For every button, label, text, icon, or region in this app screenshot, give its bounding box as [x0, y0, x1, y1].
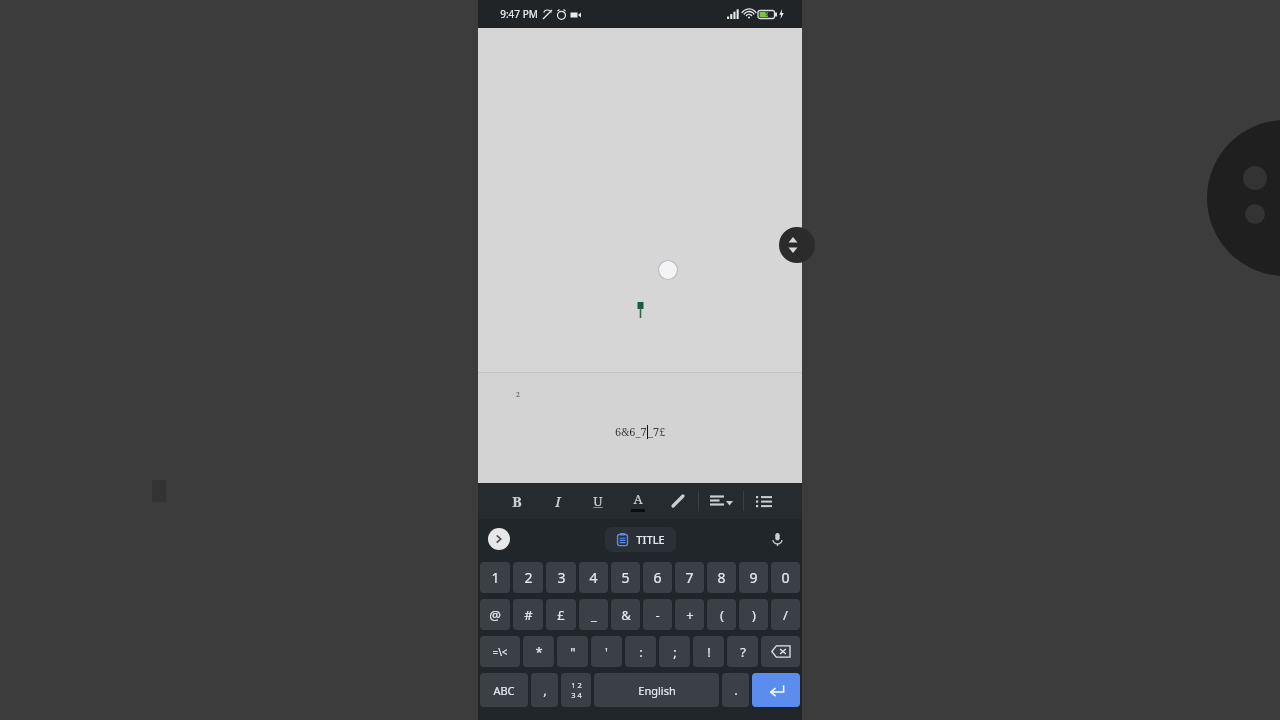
button[interactable]: Italic [537, 483, 578, 519]
staticText: ABC [493, 683, 515, 698]
staticText: " [570, 643, 576, 661]
button[interactable]: Text colour [618, 483, 658, 519]
button[interactable]: TITLE [605, 527, 676, 552]
button[interactable]: Underline [578, 483, 618, 519]
staticText: . [734, 681, 738, 699]
staticText: / [783, 606, 788, 624]
button[interactable]: & [611, 599, 640, 630]
button[interactable]: " [557, 636, 588, 667]
button[interactable]: 2 [513, 562, 543, 593]
staticText: _ [591, 606, 597, 624]
staticText: 5 [621, 568, 630, 587]
staticText: 1 2 [571, 680, 582, 690]
button[interactable]: Highlight [658, 483, 698, 519]
button[interactable]: Voice input [764, 526, 790, 552]
staticText: ' [605, 643, 608, 661]
staticText: , [543, 681, 547, 699]
button[interactable]: - [643, 599, 672, 630]
button[interactable]: More suggestions [488, 528, 510, 550]
staticText: A [633, 490, 643, 508]
button[interactable]: 9 [739, 562, 768, 593]
staticText: ! [707, 643, 711, 661]
button[interactable]: Alignment [699, 483, 743, 519]
staticText: : [639, 643, 643, 661]
staticText: 6&6_7 [615, 424, 647, 439]
staticText: 9 [749, 568, 758, 587]
button[interactable]: 0 [771, 562, 800, 593]
button[interactable]: =\< [480, 636, 520, 667]
button[interactable]: Backspace [761, 636, 800, 667]
button[interactable]: ( [707, 599, 736, 630]
button[interactable]: Bulleted list [744, 483, 784, 519]
staticText: ; [673, 643, 677, 661]
staticText: 7 [685, 568, 694, 587]
button[interactable]: Scroll up or down [779, 227, 815, 263]
button[interactable]: ? [727, 636, 758, 667]
button[interactable]: ) [739, 599, 768, 630]
button[interactable]: + [675, 599, 704, 630]
button[interactable]: 6 [643, 562, 672, 593]
staticText: & [621, 606, 631, 624]
staticText: # [524, 606, 533, 624]
staticText: - [655, 606, 660, 624]
staticText: 3 4 [571, 690, 582, 700]
staticText: English [638, 683, 676, 698]
staticText: I [555, 492, 561, 511]
staticText: ? [740, 643, 746, 661]
staticText: 6 [653, 568, 662, 587]
button[interactable]: * [523, 636, 554, 667]
button[interactable]: 3 [546, 562, 576, 593]
staticText: ) [752, 606, 756, 624]
button[interactable]: English [594, 673, 719, 707]
button[interactable]: ABC [480, 673, 528, 707]
staticText: 59 [765, 11, 771, 18]
button[interactable]: , [531, 673, 558, 707]
staticText: 2 [516, 390, 520, 400]
staticText: ( [720, 606, 724, 624]
button[interactable]: 1 2 [561, 673, 591, 707]
button[interactable]: : [625, 636, 656, 667]
button[interactable]: _ [579, 599, 608, 630]
staticText: 9:47 PM [500, 7, 538, 21]
button[interactable]: @ [480, 599, 510, 630]
staticText: 1 [491, 568, 500, 587]
button[interactable]: 8 [707, 562, 736, 593]
button[interactable]: £ [546, 599, 576, 630]
staticText: =\< [492, 645, 508, 659]
button[interactable]: / [771, 599, 800, 630]
button[interactable]: ! [693, 636, 724, 667]
staticText: _7£ [648, 424, 666, 439]
button[interactable]: Enter [752, 673, 800, 707]
button[interactable]: 1 [480, 562, 510, 593]
button[interactable]: ; [659, 636, 690, 667]
staticText: * [535, 643, 543, 661]
staticText: + [686, 606, 694, 624]
staticText: 2 [524, 568, 533, 587]
button[interactable]: ' [591, 636, 622, 667]
staticText: B [512, 492, 522, 511]
staticText: 8 [717, 568, 726, 587]
staticText: £ [557, 606, 565, 624]
button[interactable]: 7 [675, 562, 704, 593]
button[interactable]: 5 [611, 562, 640, 593]
button[interactable]: . [722, 673, 749, 707]
staticText: 3 [557, 568, 566, 587]
staticText: @ [489, 606, 501, 624]
button[interactable]: 4 [579, 562, 608, 593]
staticText: 4 [589, 568, 598, 587]
button[interactable]: Bold [496, 483, 537, 519]
staticText: 0 [781, 568, 790, 587]
staticText: TITLE [636, 532, 665, 547]
staticText: U [593, 492, 603, 510]
button[interactable]: # [513, 599, 543, 630]
